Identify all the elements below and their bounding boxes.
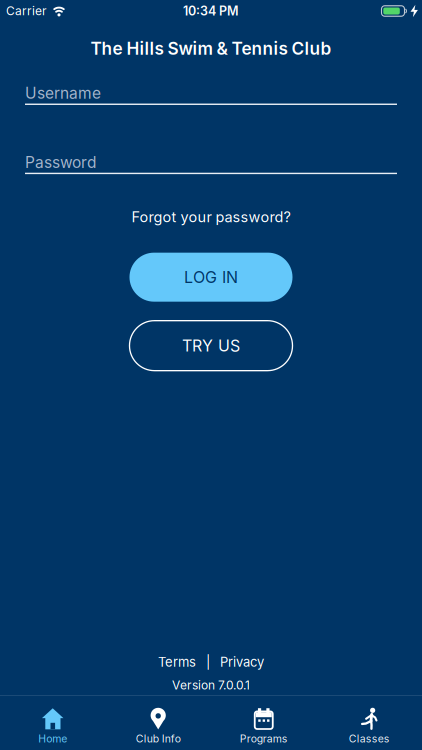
- button[interactable]: Password: [25, 153, 397, 174]
- staticText: Version 7.0.0.1: [172, 678, 250, 692]
- button[interactable]: Classes: [316, 696, 422, 745]
- button[interactable]: LOG IN: [129, 253, 292, 302]
- button[interactable]: Terms: [158, 654, 196, 670]
- staticText: TRY US: [182, 336, 240, 355]
- button[interactable]: Username: [25, 84, 397, 105]
- button[interactable]: Club Info: [105, 696, 211, 745]
- button[interactable]: TRY US: [129, 321, 292, 371]
- staticText: Username: [25, 84, 101, 103]
- staticText: Programs: [240, 732, 288, 745]
- staticText: 10:34 PM: [183, 3, 239, 18]
- staticText: Club Info: [136, 732, 181, 745]
- staticText: |: [206, 654, 210, 670]
- staticText: Home: [38, 732, 67, 745]
- staticText: Terms: [158, 654, 196, 670]
- button[interactable]: Home: [0, 696, 105, 745]
- button[interactable]: Forgot your password?: [131, 208, 290, 226]
- staticText: LOG IN: [184, 267, 238, 287]
- staticText: Forgot your password?: [131, 208, 290, 226]
- staticText: Privacy: [220, 654, 264, 670]
- staticText: Carrier: [6, 4, 47, 18]
- staticText: The Hills Swim & Tennis Club: [90, 38, 331, 59]
- staticText: Classes: [349, 732, 390, 745]
- button[interactable]: Privacy: [220, 654, 264, 670]
- staticText: Password: [25, 153, 96, 172]
- button[interactable]: Programs: [211, 696, 316, 745]
